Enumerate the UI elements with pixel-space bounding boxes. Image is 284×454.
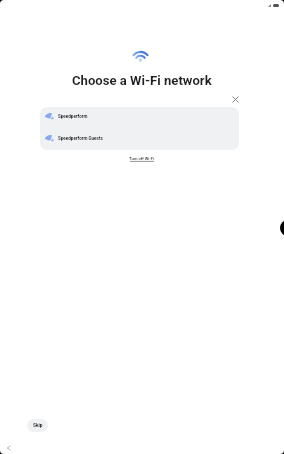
staticText: Skip [33,423,43,429]
staticText: Speedperform Guests [58,136,103,141]
staticText: Choose a Wi-Fi network [72,73,212,88]
staticText: Speedperform [58,114,88,119]
button[interactable]: Turn off Wi-Fi [125,152,159,165]
button[interactable]: Back [5,444,13,452]
button[interactable]: Close [231,95,240,104]
button[interactable]: Speedperform Guests [40,129,239,150]
button[interactable]: Skip [27,419,48,432]
button[interactable]: Speedperform [40,107,239,129]
staticText: Turn off Wi-Fi [129,156,155,161]
